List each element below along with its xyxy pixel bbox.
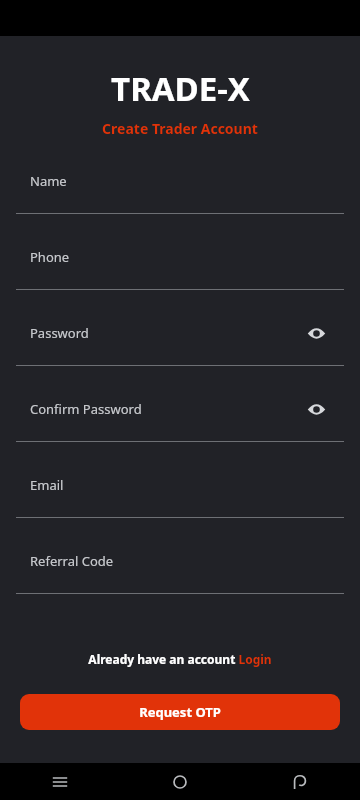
button[interactable]: Toggle password visibility xyxy=(305,322,327,344)
staticText: Phone xyxy=(30,248,70,266)
staticText: Password xyxy=(30,324,89,342)
button[interactable]: Already have an account Login xyxy=(0,648,360,670)
button[interactable]: Request OTP xyxy=(20,694,340,730)
button[interactable]: Email xyxy=(0,470,360,532)
button[interactable]: Referral Code xyxy=(0,546,360,608)
button[interactable]: Confirm Password xyxy=(0,394,360,456)
button[interactable]: Home xyxy=(120,763,240,800)
staticText: Referral Code xyxy=(30,552,114,570)
staticText: Confirm Password xyxy=(30,400,142,418)
staticText: Create Trader Account xyxy=(102,119,258,138)
staticText: Name xyxy=(30,172,67,190)
staticText: Email xyxy=(30,476,64,494)
button[interactable]: Toggle password visibility xyxy=(305,398,327,420)
staticText: TRADE-X xyxy=(111,66,250,111)
button[interactable]: Password xyxy=(0,318,360,380)
staticText: Already have an account Login xyxy=(88,651,272,667)
staticText: Request OTP xyxy=(139,703,221,721)
button[interactable]: Recent apps xyxy=(0,763,120,800)
button[interactable]: Back xyxy=(240,763,360,800)
button[interactable]: Phone xyxy=(0,242,360,304)
button[interactable]: Name xyxy=(0,166,360,228)
